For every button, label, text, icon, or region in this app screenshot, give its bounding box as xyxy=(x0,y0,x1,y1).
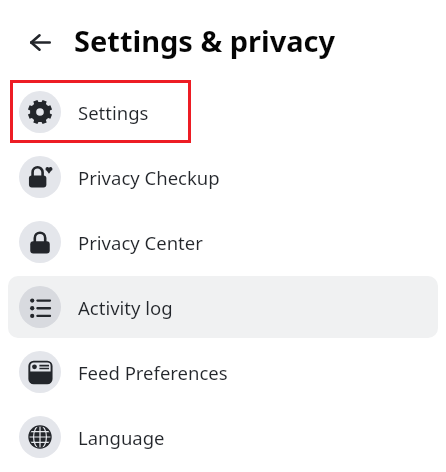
button[interactable]: Activity log xyxy=(8,276,438,338)
staticText: Activity log xyxy=(78,295,173,320)
button[interactable]: Language xyxy=(8,406,438,468)
staticText: Settings & privacy xyxy=(74,21,336,60)
staticText: Settings xyxy=(78,100,149,125)
staticText: Language xyxy=(78,425,165,450)
button[interactable]: Privacy Checkup xyxy=(8,146,438,208)
button[interactable]: Back xyxy=(18,20,63,65)
button[interactable]: Settings xyxy=(8,81,438,143)
staticText: Privacy Checkup xyxy=(78,165,220,190)
button[interactable]: Privacy Center xyxy=(8,211,438,273)
staticText: Feed Preferences xyxy=(78,360,228,385)
button[interactable]: Feed Preferences xyxy=(8,341,438,403)
staticText: Privacy Center xyxy=(78,230,203,255)
